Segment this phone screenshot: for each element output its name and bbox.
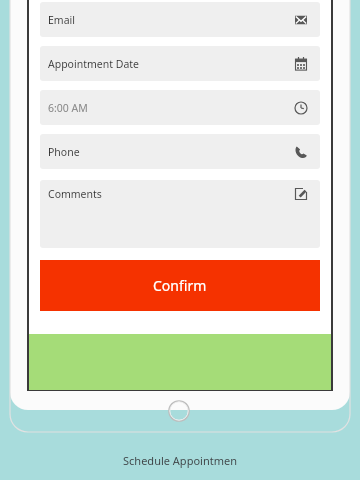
button[interactable]: Email [40,2,320,37]
staticText: Confirm [153,276,207,295]
staticText: Email [48,13,75,27]
staticText: Phone [48,145,80,159]
other: Phone [292,143,310,161]
button[interactable]: Confirm [40,260,320,311]
button[interactable]: Phone [40,134,320,169]
staticText: 6:00 AM [48,101,88,115]
staticText: Comments [48,187,102,201]
staticText: Appointment Date [48,57,139,71]
staticText: Schedule Appointmen [123,453,237,468]
other: 6:00 AM [292,99,310,117]
other: Email [292,11,310,29]
button[interactable]: Appointment Date [40,46,320,81]
other: Appointment Date [292,55,310,73]
other: Comments [292,185,310,203]
button[interactable]: 6:00 AM [40,90,320,125]
button[interactable]: Comments [40,180,320,248]
